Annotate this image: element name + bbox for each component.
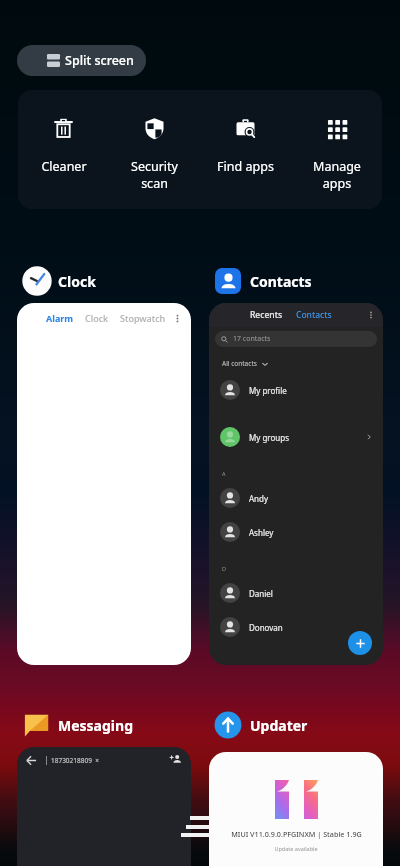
staticText: MIUI V11.0.9.0.PFGINXM | Stable 1.9G <box>231 829 362 839</box>
staticText: Find apps <box>217 158 274 175</box>
button[interactable]: Messaging <box>17 709 191 741</box>
staticText: Cleaner <box>41 158 87 175</box>
staticText: Split screen <box>65 52 134 69</box>
button[interactable]: Split screen <box>17 45 146 76</box>
button[interactable]: 17 contacts <box>215 331 377 347</box>
staticText: Andy <box>249 493 269 504</box>
staticText: Update available <box>274 845 318 852</box>
button[interactable]: Manage apps <box>291 90 382 192</box>
button[interactable]: Ashley <box>209 522 383 542</box>
button[interactable]: Back <box>26 755 37 766</box>
button[interactable]: Andy <box>209 488 383 508</box>
staticText: Recents <box>250 309 283 321</box>
other: Find apps <box>234 117 257 140</box>
staticText: 17 contacts <box>233 334 271 344</box>
staticText: Ashley <box>249 527 274 538</box>
staticText: My profile <box>249 385 287 396</box>
staticText: Messaging <box>58 716 133 735</box>
button[interactable]: Recents <box>209 303 383 665</box>
staticText: Donovan <box>249 622 283 633</box>
button[interactable]: Clock <box>17 265 191 297</box>
staticText: Clock <box>85 312 109 324</box>
button[interactable]: Daniel <box>209 583 383 603</box>
staticText: 18730218809 × <box>51 756 99 765</box>
button[interactable]: All contacts <box>222 358 269 369</box>
staticText: Stopwatch <box>120 312 166 324</box>
staticText: Updater <box>250 716 308 735</box>
staticText: All contacts <box>222 359 257 368</box>
button[interactable]: Updater <box>209 709 383 741</box>
staticText: A <box>222 470 226 477</box>
button[interactable]: Add contact <box>348 631 372 655</box>
button[interactable]: My profile <box>209 380 383 400</box>
staticText: Clock <box>58 272 96 291</box>
button[interactable]: Contacts <box>209 265 383 297</box>
staticText: D <box>222 565 227 572</box>
staticText: Manage apps <box>313 158 361 192</box>
button[interactable]: My groups <box>209 427 383 447</box>
staticText: Alarm <box>46 312 74 324</box>
button[interactable]: Alarm <box>17 303 191 665</box>
button[interactable]: Add recipient <box>170 754 182 766</box>
other: Security scan <box>143 117 166 140</box>
button[interactable]: Cleaner <box>18 90 109 175</box>
staticText: Daniel <box>249 588 273 599</box>
staticText: My groups <box>249 432 290 443</box>
button[interactable]: Back <box>17 747 191 866</box>
button[interactable]: Donovan <box>209 617 383 637</box>
button[interactable]: Security scan <box>109 90 200 192</box>
staticText: Contacts <box>296 309 332 321</box>
other: Cleaner <box>52 117 75 140</box>
staticText: Contacts <box>250 272 312 291</box>
button[interactable]: Find apps <box>200 90 291 175</box>
staticText: Security scan <box>131 158 178 192</box>
other: Manage apps <box>325 117 348 140</box>
button[interactable]: MIUI V11.0.9.0.PFGINXM | Stable 1.9G <box>209 752 383 866</box>
